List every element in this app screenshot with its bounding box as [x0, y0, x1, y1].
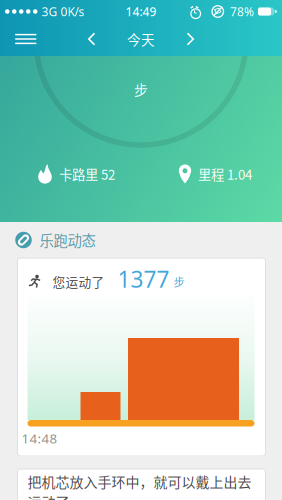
staticText: 今天: [127, 29, 155, 49]
staticText: 卡路里 52: [59, 164, 115, 184]
button[interactable]: Menu: [0, 26, 36, 52]
button[interactable]: 把机芯放入手环中，就可以戴上出去 运动了。: [17, 469, 265, 500]
button[interactable]: Previous day: [86, 31, 97, 47]
staticText: 78%: [230, 3, 254, 19]
staticText: 1377: [117, 264, 169, 294]
staticText: 里程 1.04: [198, 164, 252, 184]
staticText: 0K/s: [60, 3, 84, 19]
staticText: 您运动了: [52, 272, 104, 291]
staticText: 14:49: [125, 3, 156, 19]
staticText: 乐跑动态: [39, 230, 95, 250]
staticText: 14:48: [21, 429, 57, 447]
staticText: 步: [173, 273, 184, 290]
button[interactable]: Next day: [185, 31, 196, 47]
button[interactable]: 您运动了: [17, 258, 265, 456]
staticText: 3G: [41, 3, 57, 19]
staticText: 步: [134, 79, 148, 99]
staticText: 把机芯放入手环中，就可以戴上出去 运动了。: [27, 471, 251, 500]
